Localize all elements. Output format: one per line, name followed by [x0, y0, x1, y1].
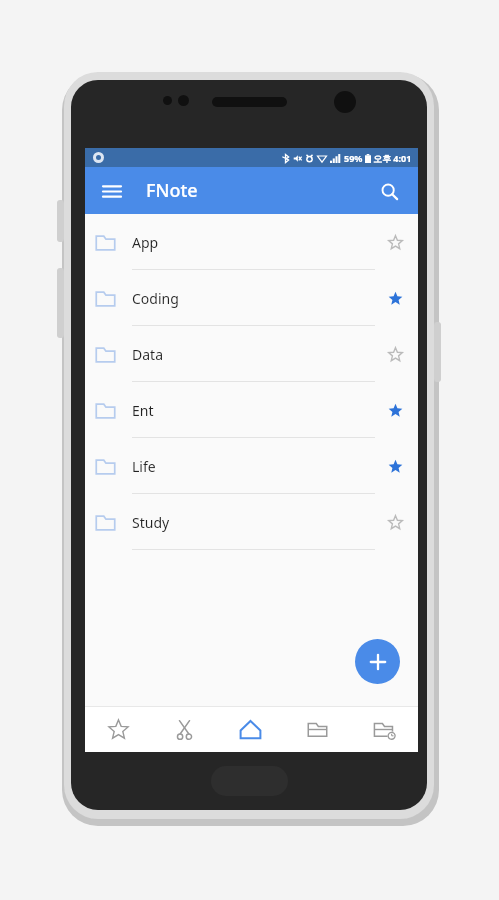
staticText: Study: [132, 513, 170, 532]
staticText: App: [132, 233, 159, 252]
button[interactable]: Cut: [151, 706, 217, 752]
button[interactable]: Coding: [85, 270, 418, 326]
button[interactable]: Open navigation menu: [95, 174, 129, 208]
button[interactable]: Folders: [284, 706, 351, 752]
button[interactable]: Home: [217, 706, 284, 752]
staticText: 59%: [344, 152, 363, 164]
button[interactable]: Recent folders: [351, 706, 418, 752]
button[interactable]: Study: [85, 494, 418, 550]
staticText: Coding: [132, 289, 179, 308]
button[interactable]: Ent: [85, 382, 418, 438]
button[interactable]: Remove from favorites: [375, 278, 415, 318]
button[interactable]: Life: [85, 438, 418, 494]
staticText: Ent: [132, 401, 154, 420]
button[interactable]: App: [85, 214, 418, 270]
staticText: Data: [132, 345, 163, 364]
button[interactable]: Add to favorites: [375, 502, 415, 542]
button[interactable]: Remove from favorites: [375, 390, 415, 430]
button[interactable]: Remove from favorites: [375, 446, 415, 486]
button[interactable]: Search: [372, 174, 406, 208]
button[interactable]: Add to favorites: [375, 334, 415, 374]
staticText: FNote: [146, 178, 198, 203]
button[interactable]: Add folder: [355, 639, 400, 684]
button[interactable]: Data: [85, 326, 418, 382]
button[interactable]: Add to favorites: [375, 222, 415, 262]
button[interactable]: Favorites: [85, 706, 151, 752]
staticText: Life: [132, 457, 156, 476]
staticText: 오후 4:01: [373, 152, 412, 164]
